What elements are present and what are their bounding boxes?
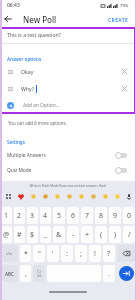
- button[interactable]: Emoji keyboard: [2, 190, 15, 203]
- button[interactable]: _: [40, 226, 51, 243]
- button[interactable]: (: [95, 226, 107, 243]
- button[interactable]: 1: [1, 207, 12, 224]
- button[interactable]: ): [109, 226, 121, 243]
- staticText: ): [114, 230, 117, 240]
- staticText: &: [56, 230, 62, 240]
- staticText: -: [72, 230, 75, 240]
- staticText: CREATE: [108, 16, 129, 23]
- button[interactable]: 9: [109, 207, 121, 224]
- staticText: Why?: [21, 85, 35, 92]
- button[interactable]: -: [67, 226, 79, 243]
- staticText: /: [128, 230, 131, 240]
- button[interactable]: Emoji: [39, 190, 51, 203]
- button[interactable]: =\<: [1, 245, 18, 262]
- button[interactable]: !: [89, 245, 101, 262]
- button[interactable]: ;: [75, 245, 87, 262]
- button[interactable]: ,: [20, 265, 31, 282]
- button[interactable]: ?: [103, 245, 115, 262]
- staticText: _: [44, 230, 48, 240]
- staticText: 2: [17, 211, 22, 221]
- button[interactable]: 8: [95, 207, 107, 224]
- button[interactable]: Remove option: [116, 81, 132, 96]
- staticText: ABC: [5, 271, 14, 277]
- button[interactable]: 3: [27, 207, 38, 224]
- button[interactable]: ABC: [1, 265, 18, 282]
- button[interactable]: @: [1, 226, 12, 243]
- staticText: 1: [4, 211, 9, 221]
- staticText: 5: [57, 211, 62, 221]
- button[interactable]: Remove option: [116, 64, 132, 79]
- button[interactable]: Emoji: [27, 190, 39, 203]
- staticText: ,: [25, 269, 27, 279]
- button[interactable]: 1 2: [33, 265, 45, 282]
- staticText: This is a test question?: [7, 32, 61, 39]
- staticText: :: [66, 249, 68, 259]
- button[interactable]: 0: [123, 207, 135, 224]
- button[interactable]: Voice input: [123, 190, 135, 203]
- staticText: 7: [85, 211, 90, 221]
- button[interactable]: CREATE: [101, 13, 136, 26]
- staticText: .: [108, 269, 110, 279]
- staticText: Okay: [21, 68, 34, 75]
- staticText: ;: [80, 249, 82, 259]
- staticText: +: [85, 230, 90, 240]
- staticText: *: [24, 249, 28, 259]
- staticText: 9: [113, 211, 118, 221]
- staticText: #: [17, 230, 22, 240]
- button[interactable]: ": [33, 245, 45, 262]
- staticText: 79%: [120, 3, 129, 9]
- button[interactable]: Quiz Mode: [0, 163, 136, 178]
- staticText: @: [3, 230, 10, 240]
- button[interactable]: 5: [53, 207, 65, 224]
- staticText: $: [30, 230, 35, 240]
- staticText: 0: [127, 211, 132, 221]
- button[interactable]: Emoji: [87, 190, 99, 203]
- staticText: 8: [99, 211, 104, 221]
- staticText: (: [100, 230, 103, 240]
- button[interactable]: 4: [40, 207, 51, 224]
- other: Reorder option: [0, 64, 21, 79]
- button[interactable]: #: [14, 226, 25, 243]
- button[interactable]: Emoji: [15, 190, 27, 203]
- button[interactable]: 2: [14, 207, 25, 224]
- button[interactable]: /: [123, 226, 135, 243]
- button[interactable]: Emoji: [63, 190, 75, 203]
- button[interactable]: Reorder option: [0, 81, 136, 96]
- button[interactable]: Multiple Answers: [0, 148, 136, 163]
- staticText: Multiple Answers: [7, 152, 46, 159]
- button[interactable]: Emoji: [99, 190, 111, 203]
- staticText: 6: [71, 211, 76, 221]
- staticText: 4: [43, 211, 48, 221]
- button[interactable]: 6: [67, 207, 79, 224]
- button[interactable]: Emoji: [51, 190, 63, 203]
- staticText: You can add 8 more options.: [8, 120, 67, 126]
- staticText: ?: [107, 249, 111, 259]
- button[interactable]: *: [20, 245, 31, 262]
- button[interactable]: Navigate up: [0, 11, 16, 27]
- staticText: Answer options: [7, 56, 42, 62]
- other: Reorder option: [0, 81, 21, 96]
- button[interactable]: .: [103, 265, 115, 282]
- staticText: !: [94, 249, 96, 259]
- button[interactable]: Backspace: [117, 245, 135, 262]
- staticText: New Poll: [23, 14, 57, 25]
- button[interactable]: :: [61, 245, 73, 262]
- button[interactable]: Emoji: [111, 190, 123, 203]
- button[interactable]: 7: [81, 207, 93, 224]
- staticText: Write in Flash Mode (how new content ans…: [0, 184, 136, 188]
- button[interactable]: Add an Option...: [0, 98, 136, 113]
- staticText: 06:43: [7, 2, 20, 9]
- staticText: Settings: [7, 139, 25, 145]
- button[interactable]: Reorder option: [0, 64, 136, 79]
- button[interactable]: Enter: [119, 266, 134, 281]
- staticText: ": [38, 249, 41, 259]
- button[interactable]: Emoji: [75, 190, 87, 203]
- button[interactable]: $: [27, 226, 38, 243]
- button[interactable]: &: [53, 226, 65, 243]
- button[interactable]: ': [47, 245, 59, 262]
- staticText: 1 2: [37, 270, 41, 274]
- staticText: Quiz Mode: [7, 167, 32, 174]
- button[interactable]: +: [81, 226, 93, 243]
- staticText: Add an Option...: [23, 102, 60, 109]
